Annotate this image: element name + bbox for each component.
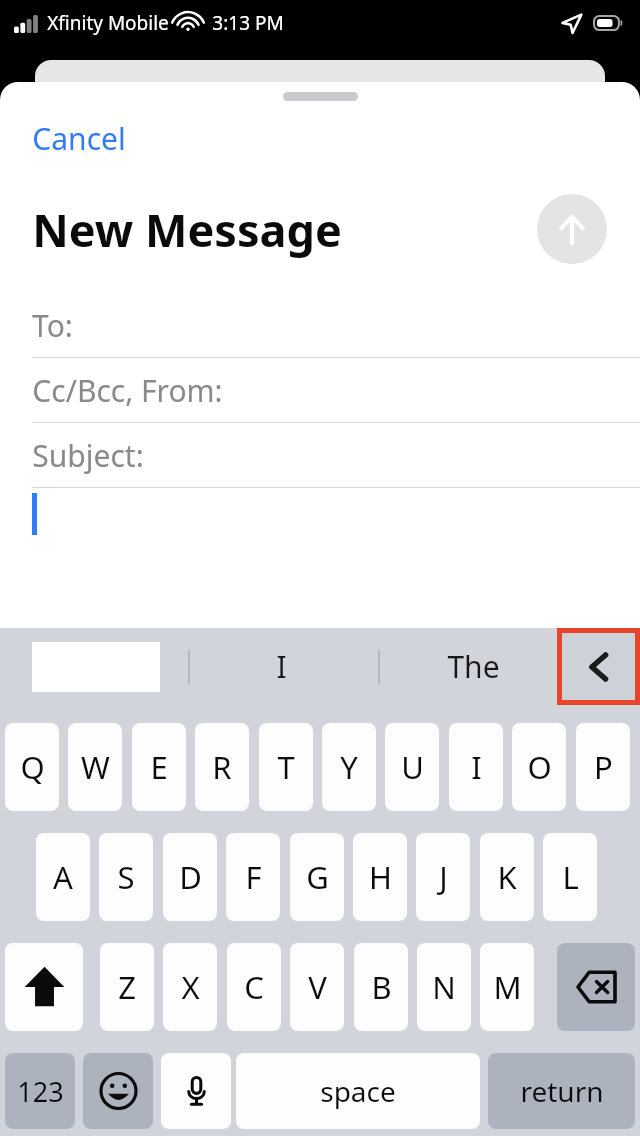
button[interactable]: Q (5, 723, 59, 811)
button[interactable]: 123 (5, 1053, 75, 1129)
button[interactable]: Dictate (161, 1053, 231, 1129)
staticText: Q (20, 746, 45, 788)
staticText: N (432, 966, 456, 1008)
staticText: W (81, 746, 110, 788)
staticText: M (493, 966, 522, 1008)
staticText: The (447, 646, 500, 687)
button[interactable]: G (290, 833, 344, 921)
button[interactable]: U (385, 723, 439, 811)
button[interactable]: E (132, 723, 186, 811)
button[interactable]: L (543, 833, 597, 921)
staticText: Subject: (32, 435, 144, 476)
button[interactable]: To: (0, 293, 640, 358)
staticText: S (117, 856, 135, 898)
staticText: Z (118, 966, 136, 1008)
staticText: X (181, 966, 200, 1008)
button[interactable]: H (353, 833, 407, 921)
button[interactable]: J (416, 833, 470, 921)
staticText: L (562, 856, 579, 898)
staticText: V (308, 966, 327, 1008)
button[interactable]: X (163, 943, 217, 1031)
button[interactable]: W (68, 723, 122, 811)
staticText: T (277, 746, 295, 788)
button[interactable]: A (36, 833, 90, 921)
staticText: Xfinity Mobile (47, 10, 169, 36)
staticText: 3:13 PM (212, 10, 284, 36)
staticText: G (306, 856, 329, 898)
button[interactable]: Backspace (557, 943, 635, 1031)
button[interactable]: B (354, 943, 408, 1031)
staticText: return (520, 1072, 604, 1110)
button[interactable]: The (388, 628, 558, 705)
staticText: Y (340, 746, 358, 788)
button[interactable]: return (488, 1053, 635, 1129)
staticText: To: (32, 305, 73, 346)
button[interactable]: Previous suggestions (562, 633, 635, 700)
button[interactable]: M (480, 943, 534, 1031)
button[interactable]: Cancel (20, 112, 138, 165)
button[interactable]: Send (537, 194, 607, 264)
button[interactable]: Emoji (83, 1053, 153, 1129)
staticText: 123 (17, 1073, 64, 1110)
staticText: K (497, 856, 517, 898)
button[interactable]: T (259, 723, 313, 811)
staticText: E (150, 746, 168, 788)
button[interactable]: F (226, 833, 280, 921)
button[interactable]: V (290, 943, 344, 1031)
button[interactable]: S (99, 833, 153, 921)
staticText: H (369, 856, 392, 898)
button[interactable] (0, 488, 640, 548)
button[interactable]: R (195, 723, 249, 811)
button[interactable]: I (449, 723, 503, 811)
button[interactable]: Subject: (0, 423, 640, 488)
button[interactable]: N (417, 943, 471, 1031)
button[interactable]: O (512, 723, 566, 811)
button[interactable]: Y (322, 723, 376, 811)
staticText: P (594, 746, 613, 788)
button[interactable]: P (576, 723, 630, 811)
staticText: Cancel (32, 118, 126, 159)
staticText: A (53, 856, 73, 898)
button[interactable]: Cc/Bcc, From: (0, 358, 640, 423)
staticText: New Message (32, 199, 342, 260)
staticText: C (244, 966, 264, 1008)
button[interactable]: Shift (5, 943, 83, 1031)
staticText: O (527, 746, 552, 788)
button[interactable]: K (480, 833, 534, 921)
staticText: I (276, 646, 287, 687)
staticText: D (179, 856, 202, 898)
staticText: I (471, 746, 482, 788)
staticText: U (401, 746, 424, 788)
button[interactable]: space (236, 1053, 480, 1129)
staticText: F (245, 856, 262, 898)
staticText: space (320, 1072, 396, 1110)
staticText: R (212, 746, 232, 788)
button[interactable]: I (196, 628, 366, 705)
button[interactable]: C (227, 943, 281, 1031)
staticText: J (439, 856, 448, 898)
staticText: B (371, 966, 392, 1008)
button[interactable]: D (163, 833, 217, 921)
button[interactable]: Z (100, 943, 154, 1031)
staticText: Cc/Bcc, From: (32, 370, 223, 411)
